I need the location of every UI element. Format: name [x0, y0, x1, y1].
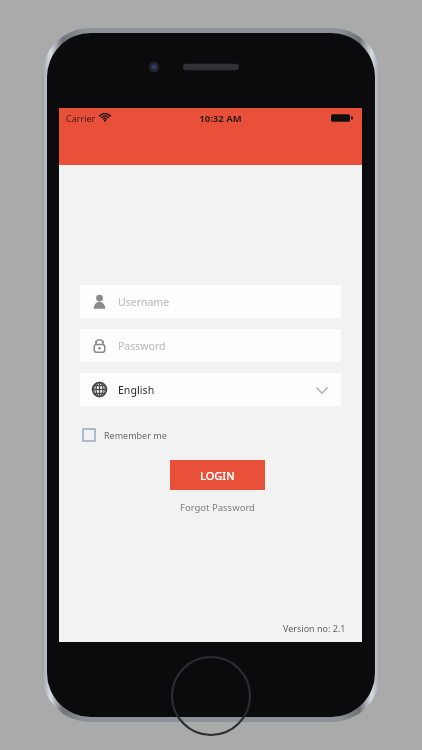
other: Username [91, 293, 108, 310]
staticText: Version no: 2.1 [283, 622, 346, 634]
button[interactable]: Forgot Password [180, 501, 255, 514]
other: Password [91, 337, 108, 354]
button[interactable]: Language [80, 373, 341, 406]
staticText: Forgot Password [180, 501, 255, 514]
button[interactable]: Password [80, 329, 341, 362]
staticText: Username [118, 295, 170, 309]
other: Language [91, 381, 108, 398]
staticText: Password [118, 339, 166, 353]
staticText: English [118, 383, 155, 397]
button[interactable]: Remember me [83, 423, 167, 447]
staticText: Carrier [66, 112, 96, 124]
staticText: LOGIN [200, 468, 235, 483]
staticText: Remember me [104, 429, 167, 441]
button[interactable]: LOGIN [170, 460, 265, 490]
button[interactable]: Username [80, 285, 341, 318]
staticText: 10:32 AM [199, 112, 242, 125]
